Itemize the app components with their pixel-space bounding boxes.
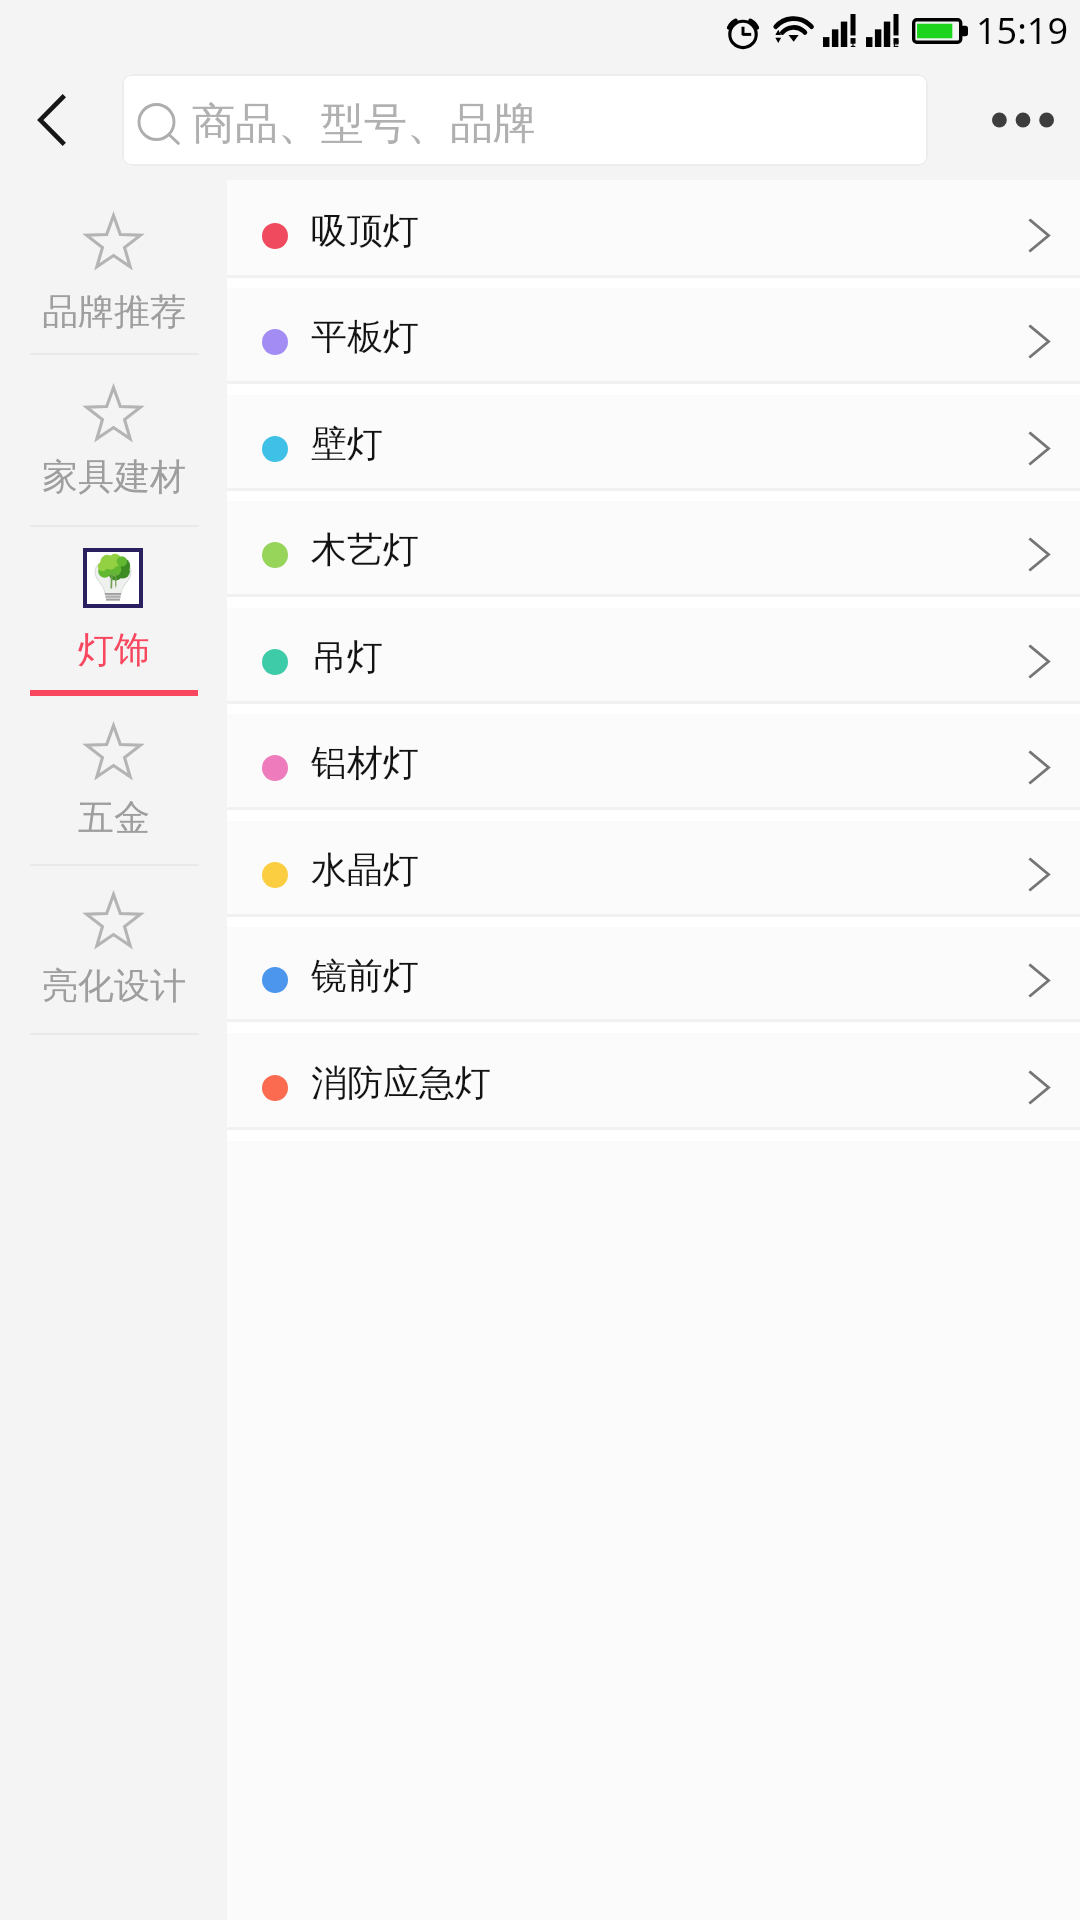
- staticText: 家具建材: [42, 454, 186, 499]
- staticText: 水晶灯: [311, 847, 419, 892]
- staticText: 消防应急灯: [311, 1060, 491, 1105]
- staticText: 亮化设计: [42, 963, 186, 1008]
- button[interactable]: 商品、型号、品牌: [122, 74, 928, 166]
- button[interactable]: 铝材灯: [227, 714, 1080, 821]
- button[interactable]: 消防应急灯: [227, 1034, 1080, 1141]
- button[interactable]: [0, 864, 227, 1033]
- staticText: 铝材灯: [311, 740, 419, 785]
- button[interactable]: [0, 525, 227, 696]
- button[interactable]: 镜前灯: [227, 927, 1080, 1033]
- button[interactable]: 水晶灯: [227, 821, 1080, 928]
- button[interactable]: Back: [0, 60, 110, 180]
- button[interactable]: 平板灯: [227, 288, 1080, 395]
- staticText: 木艺灯: [311, 527, 419, 572]
- staticText: 商品、型号、品牌: [192, 97, 536, 151]
- button[interactable]: [0, 353, 227, 525]
- button[interactable]: 木艺灯: [227, 501, 1080, 608]
- staticText: 品牌推荐: [42, 289, 186, 334]
- staticText: 15:19: [976, 6, 1069, 55]
- button[interactable]: [0, 180, 227, 353]
- staticText: 壁灯: [311, 421, 383, 466]
- button[interactable]: 吊灯: [227, 608, 1080, 715]
- button[interactable]: 吸顶灯: [227, 182, 1080, 289]
- staticText: 灯饰: [78, 627, 150, 672]
- button[interactable]: More options: [966, 60, 1080, 180]
- button[interactable]: [0, 696, 227, 864]
- staticText: 五金: [78, 795, 150, 840]
- button[interactable]: 壁灯: [227, 395, 1080, 502]
- staticText: 平板灯: [311, 314, 419, 359]
- staticText: 镜前灯: [311, 953, 419, 998]
- staticText: 吊灯: [311, 634, 383, 679]
- staticText: 吸顶灯: [311, 208, 419, 253]
